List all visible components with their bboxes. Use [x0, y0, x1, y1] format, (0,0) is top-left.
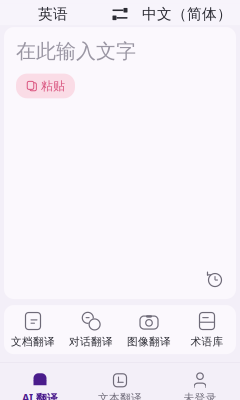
staticText: 在此输入文字: [16, 39, 136, 64]
staticText: 图像翻译: [127, 335, 171, 348]
button[interactable]: 英语: [6, 0, 100, 30]
button[interactable]: 文本翻译: [80, 368, 160, 400]
staticText: 未登录: [183, 391, 216, 400]
button[interactable]: 交换语言: [100, 3, 140, 25]
button[interactable]: 术语库: [178, 305, 236, 354]
staticText: AI 翻译: [22, 391, 58, 400]
staticText: 术语库: [190, 335, 223, 348]
button[interactable]: 未登录: [160, 368, 240, 400]
button[interactable]: 文档翻译: [4, 305, 62, 354]
staticText: 文本翻译: [98, 391, 142, 400]
button[interactable]: 历史记录: [200, 265, 230, 295]
staticText: 对话翻译: [69, 335, 113, 348]
staticText: 粘贴: [41, 79, 65, 93]
staticText: 文档翻译: [11, 335, 55, 348]
staticText: 中文（简体）: [142, 5, 232, 23]
button[interactable]: 对话翻译: [62, 305, 120, 354]
button[interactable]: AI 翻译: [0, 368, 80, 400]
staticText: 英语: [38, 5, 68, 23]
button[interactable]: 图像翻译: [120, 305, 178, 354]
button[interactable]: 粘贴: [16, 74, 75, 98]
button[interactable]: 中文（简体）: [140, 0, 234, 30]
